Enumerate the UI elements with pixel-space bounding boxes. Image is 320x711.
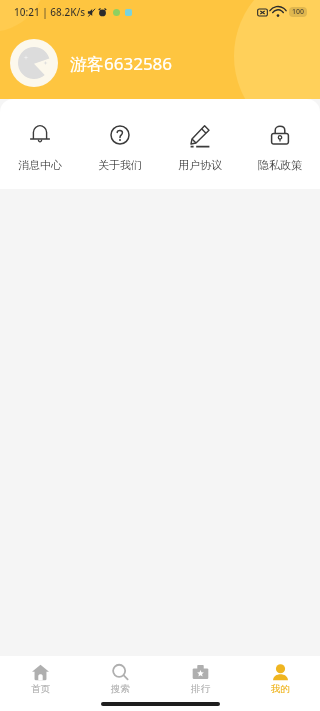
staticText: 消息中心 [18,158,62,172]
staticText: 关于我们 [98,158,142,172]
button[interactable]: 首页 [0,656,80,711]
button[interactable]: 隐私政策 [240,99,320,180]
staticText: 首页 [31,683,50,695]
staticText: 我的 [271,683,290,695]
staticText: 隐私政策 [258,158,302,172]
button[interactable]: 用户协议 [160,99,240,180]
button[interactable]: 消息中心 [0,99,80,180]
staticText: 100 [292,7,305,17]
button[interactable]: 搜索 [80,656,160,711]
staticText: 用户协议 [178,158,222,172]
staticText: 游客6632586 [70,52,173,75]
staticText: 10:21 | 68.2K/s [14,5,86,19]
staticText: 搜索 [111,683,130,695]
button[interactable]: 排行 [160,656,240,711]
staticText: 排行 [191,683,210,695]
button[interactable]: 我的 [240,656,320,711]
button[interactable]: 关于我们 [80,99,160,180]
